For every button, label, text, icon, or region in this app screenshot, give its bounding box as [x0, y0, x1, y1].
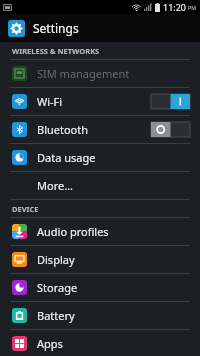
staticText: 11:20 [163, 1, 187, 13]
staticText: More… [37, 178, 190, 193]
button[interactable]: Toggle on [151, 94, 190, 109]
button[interactable]: Battery [0, 302, 200, 329]
staticText: Bluetooth [37, 122, 151, 137]
staticText: Storage [37, 280, 190, 295]
button[interactable]: Audio profiles [0, 218, 200, 245]
button[interactable]: Apps [0, 330, 200, 356]
staticText: Data usage [37, 150, 190, 165]
staticText: WIRELESS & NETWORKS [12, 46, 100, 56]
button[interactable]: Storage [0, 274, 200, 301]
button[interactable]: Toggle off [151, 122, 190, 137]
staticText: SIM management [37, 66, 190, 81]
button[interactable]: Data usage [0, 144, 200, 171]
staticText: Apps [37, 336, 190, 351]
button[interactable]: Bluetooth [0, 116, 200, 143]
button[interactable]: SIM management [0, 60, 200, 87]
staticText: Wi-Fi [37, 94, 151, 109]
button[interactable]: Display [0, 246, 200, 273]
staticText: DEVICE [12, 204, 39, 214]
staticText: Display [37, 252, 190, 267]
button[interactable]: Wi-Fi [0, 88, 200, 115]
staticText: Battery [37, 308, 190, 323]
staticText: Audio profiles [37, 224, 190, 239]
staticText: Settings [33, 20, 79, 36]
button[interactable]: Settings [0, 14, 200, 42]
button[interactable]: More… [0, 172, 200, 199]
staticText: PM [188, 4, 197, 11]
